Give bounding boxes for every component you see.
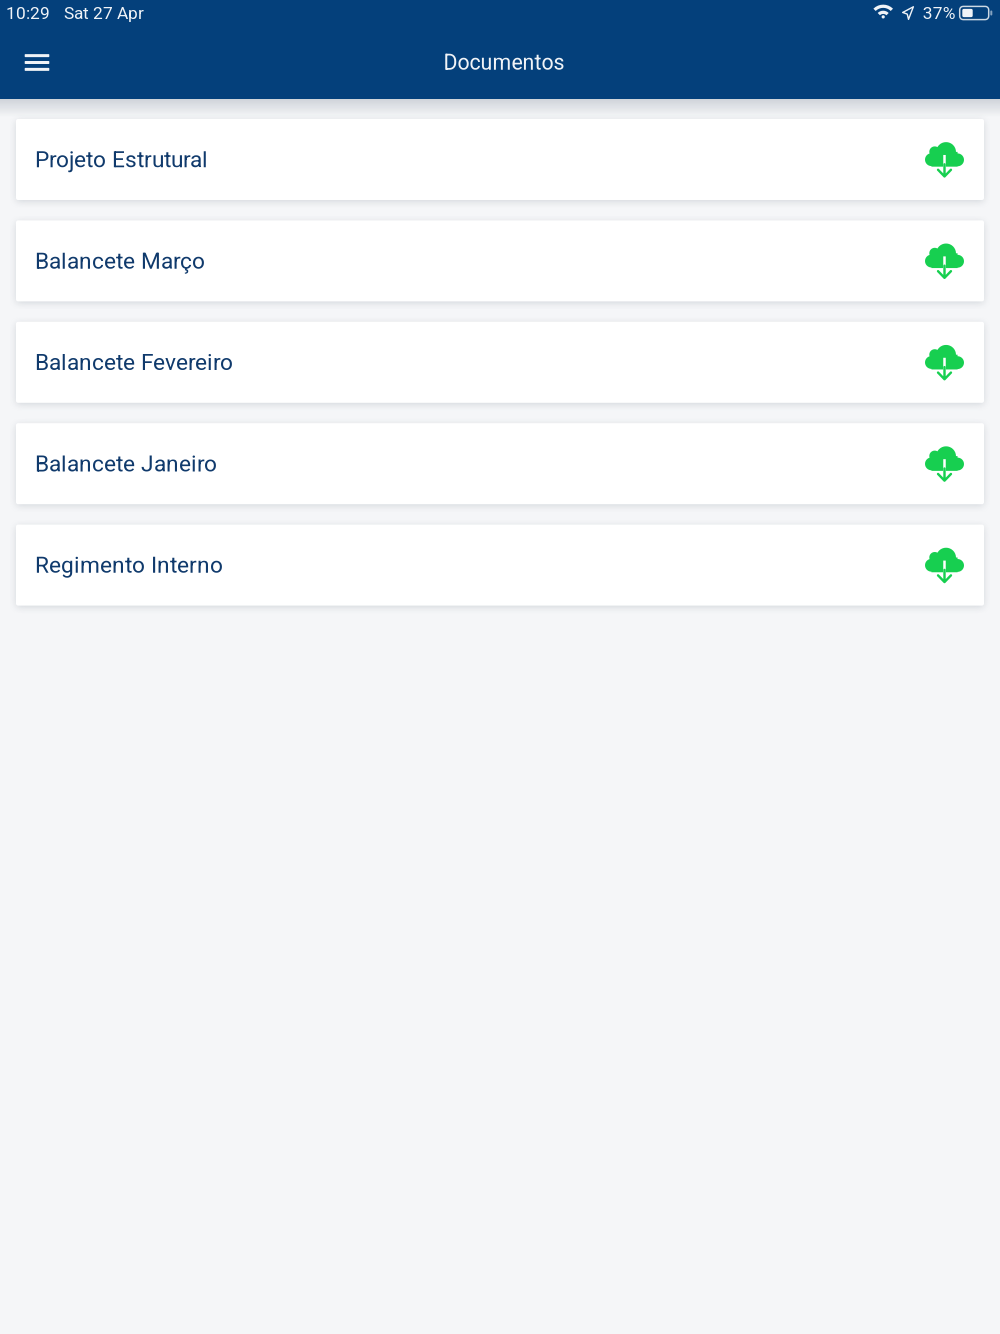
button[interactable]: Balancete Janeiro <box>16 423 984 504</box>
staticText: Regimento Interno <box>35 552 223 578</box>
staticText: Balancete Março <box>35 248 205 274</box>
staticText: 37% <box>923 3 956 23</box>
button[interactable]: Projeto Estrutural <box>16 119 984 200</box>
button[interactable]: Balancete Março <box>16 220 984 301</box>
staticText: Projeto Estrutural <box>35 146 208 173</box>
staticText: 10:29 <box>6 3 50 23</box>
button[interactable]: Balancete Fevereiro <box>16 322 984 403</box>
button[interactable]: Menu <box>0 26 63 99</box>
staticText: Documentos <box>443 50 564 75</box>
button[interactable]: Regimento Interno <box>16 525 984 606</box>
staticText: Sat 27 Apr <box>64 3 144 23</box>
staticText: Balancete Fevereiro <box>35 349 233 376</box>
staticText: Balancete Janeiro <box>35 450 217 477</box>
